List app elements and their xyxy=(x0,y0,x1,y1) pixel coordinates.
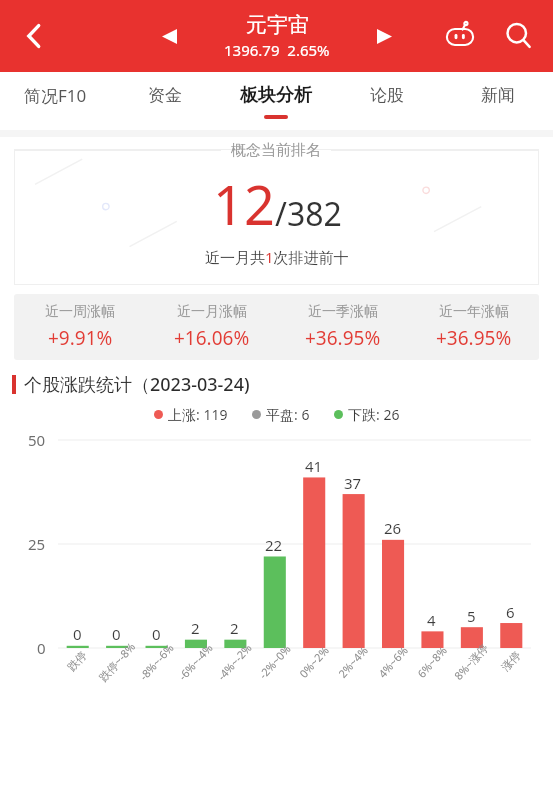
button[interactable]: 近一月涨幅 xyxy=(146,303,277,351)
staticText: -6%~-4% xyxy=(175,640,216,683)
button[interactable]: Assistant xyxy=(437,13,483,59)
staticText: 近一季涨幅 xyxy=(308,303,378,321)
button[interactable]: 近一季涨幅 xyxy=(277,303,408,351)
staticText: 6%~8% xyxy=(414,642,450,681)
staticText: 0 xyxy=(152,624,161,644)
staticText: 0%~2% xyxy=(296,642,332,681)
staticText: 12 xyxy=(213,167,275,241)
button[interactable]: 平盘: 6 xyxy=(252,405,310,424)
staticText: 1396.79 2.65% xyxy=(224,40,330,60)
staticText: 26 xyxy=(384,518,402,538)
staticText: 2%~4% xyxy=(335,642,371,681)
staticText: 2 xyxy=(191,618,200,638)
staticText: +9.91% xyxy=(48,325,113,351)
button[interactable]: 新闻 xyxy=(442,72,553,130)
staticText: 论股 xyxy=(370,85,404,106)
staticText: 元宇宙 xyxy=(246,12,309,38)
button[interactable]: 简况F10 xyxy=(0,72,110,130)
staticText: -2%~0% xyxy=(255,641,294,682)
staticText: 涨停 xyxy=(498,648,523,674)
staticText: +36.95% xyxy=(305,325,381,351)
staticText: +16.06% xyxy=(174,325,250,351)
staticText: 资金 xyxy=(148,85,182,106)
staticText: -4%~-2% xyxy=(214,640,255,683)
staticText: 近一年涨幅 xyxy=(439,303,509,321)
button[interactable]: Previous sector xyxy=(148,15,190,57)
staticText: 37 xyxy=(344,473,362,493)
staticText: 下跌: 26 xyxy=(348,405,400,424)
staticText: 2 xyxy=(230,618,239,638)
staticText: 平盘: 6 xyxy=(266,405,310,424)
staticText: 6 xyxy=(506,602,515,622)
staticText: 0 xyxy=(112,624,121,644)
staticText: 跌停 xyxy=(64,648,89,674)
button[interactable]: 近一年涨幅 xyxy=(408,303,539,351)
staticText: 近一周涨幅 xyxy=(45,303,115,321)
staticText: 个股涨跌统计（2023-03-24) xyxy=(24,372,250,397)
staticText: 22 xyxy=(265,535,283,555)
staticText: 近一月共1次排进前十 xyxy=(205,247,349,267)
staticText: 0 xyxy=(37,638,46,658)
staticText: /382 xyxy=(275,192,342,236)
button[interactable]: Next sector xyxy=(363,15,405,57)
staticText: 50 xyxy=(28,430,46,450)
staticText: 4 xyxy=(427,610,436,630)
button[interactable]: Search xyxy=(493,10,545,62)
staticText: +36.95% xyxy=(436,325,512,351)
staticText: 41 xyxy=(305,456,323,476)
staticText: 概念当前排名 xyxy=(231,141,321,160)
staticText: 新闻 xyxy=(481,85,515,106)
staticText: 板块分析 xyxy=(240,84,312,107)
button[interactable]: 论股 xyxy=(331,72,442,130)
staticText: 简况F10 xyxy=(24,84,87,107)
staticText: 25 xyxy=(28,534,46,554)
staticText: 上涨: 119 xyxy=(168,405,228,424)
staticText: 近一月涨幅 xyxy=(177,303,247,321)
staticText: 0 xyxy=(73,624,82,644)
button[interactable]: 下跌: 26 xyxy=(334,405,400,424)
staticText: 4%~6% xyxy=(375,642,411,681)
staticText: 8%~涨停 xyxy=(451,640,491,683)
button[interactable]: 资金 xyxy=(110,72,220,130)
button[interactable]: 板块分析 xyxy=(220,72,331,130)
button[interactable]: 近一周涨幅 xyxy=(14,303,146,351)
button[interactable]: Back xyxy=(8,10,60,62)
staticText: 跌停~-8% xyxy=(95,639,139,684)
staticText: 5 xyxy=(467,606,476,626)
button[interactable]: 上涨: 119 xyxy=(154,405,228,424)
staticText: -8%~-6% xyxy=(136,640,177,683)
